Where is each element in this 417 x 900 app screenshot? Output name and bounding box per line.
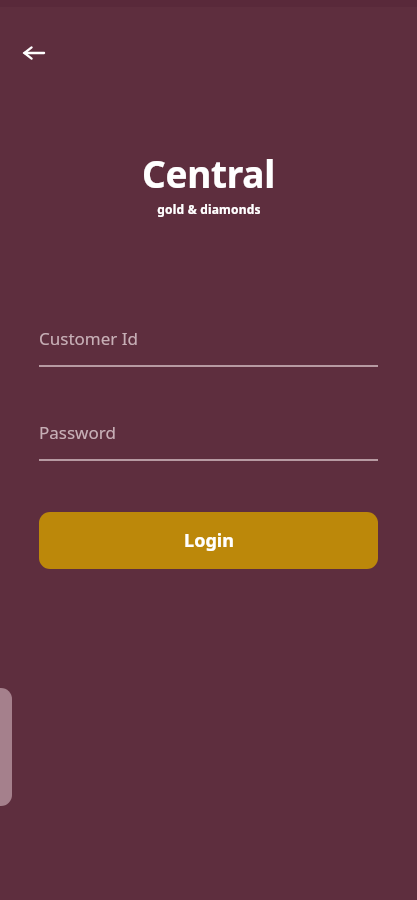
staticText: Password [39,421,116,444]
staticText: gold & diamonds [157,201,261,217]
button[interactable]: Login [39,512,378,569]
staticText: Login [184,528,234,553]
staticText: Customer Id [39,327,138,350]
staticText: Central [142,148,275,198]
button[interactable]: Back [14,33,54,73]
button[interactable]: Open navigation drawer [0,688,12,806]
button[interactable]: Customer Id [39,327,378,367]
button[interactable]: Password [39,421,378,461]
